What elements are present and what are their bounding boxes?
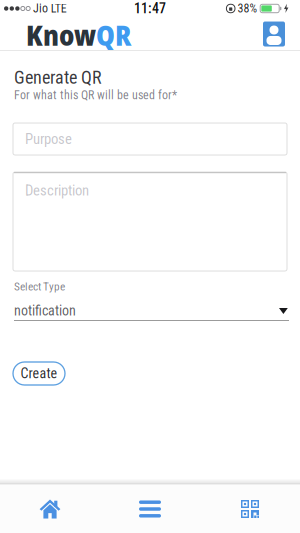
button[interactable]: Home xyxy=(0,485,100,533)
button[interactable]: Menu xyxy=(100,485,200,533)
staticText: LTE xyxy=(51,1,67,16)
staticText: Know xyxy=(26,16,96,54)
staticText: Select Type xyxy=(14,280,65,293)
button[interactable]: Create xyxy=(13,362,65,385)
staticText: Generate QR xyxy=(14,67,102,88)
button[interactable]: Profile xyxy=(263,21,285,46)
button[interactable]: notification xyxy=(14,297,289,322)
button[interactable]: QR Codes xyxy=(200,485,300,533)
staticText: For what this QR will be used for* xyxy=(14,88,177,102)
staticText: 11:47 xyxy=(134,0,166,17)
staticText: QR xyxy=(96,16,131,54)
staticText: Description xyxy=(25,182,89,199)
staticText: Jio xyxy=(33,1,48,16)
button[interactable]: Description xyxy=(13,172,287,271)
staticText: Purpose xyxy=(25,130,72,148)
staticText: 38% xyxy=(238,1,258,16)
staticText: notification xyxy=(14,302,76,319)
staticText: Create xyxy=(20,365,57,382)
button[interactable]: Purpose xyxy=(13,123,287,155)
